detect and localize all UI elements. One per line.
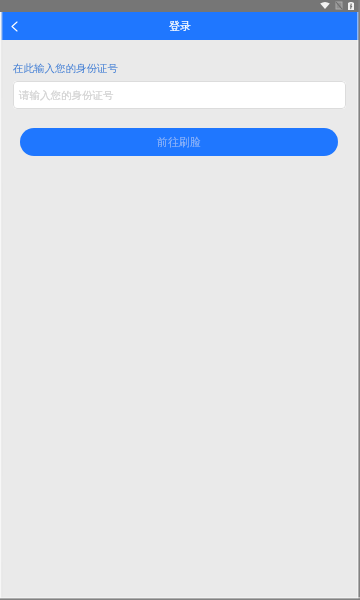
button[interactable]: 请输入您的身份证号: [13, 81, 346, 109]
button[interactable]: Back: [0, 12, 28, 40]
staticText: 登录: [169, 19, 191, 33]
staticText: 请输入您的身份证号: [19, 89, 114, 102]
staticText: 前往刷脸: [157, 135, 201, 149]
staticText: 在此输入您的身份证号: [13, 62, 118, 75]
button[interactable]: 前往刷脸: [20, 128, 338, 156]
